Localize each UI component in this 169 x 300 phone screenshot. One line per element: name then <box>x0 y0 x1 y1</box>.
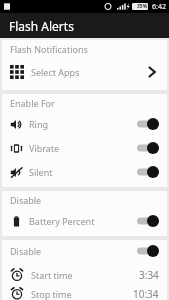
staticText: Vibrate <box>29 142 60 154</box>
button[interactable]: Battery Percent <box>2 209 167 233</box>
staticText: Select Apps <box>31 66 80 78</box>
button[interactable]: Start time <box>2 262 167 287</box>
button[interactable]: Toggle <box>137 166 159 178</box>
staticText: 6:42 <box>152 2 166 12</box>
staticText: Battery Percent <box>29 215 95 227</box>
staticText: 3:34 <box>139 268 159 282</box>
button[interactable]: Stop time <box>2 287 167 300</box>
staticText: 10:34 <box>133 287 159 300</box>
button[interactable]: Disable <box>2 240 167 262</box>
button[interactable]: Select Apps <box>2 58 167 86</box>
button[interactable]: Vibrate <box>2 136 167 160</box>
staticText: Disable <box>10 245 42 257</box>
staticText: Enable For <box>10 97 55 109</box>
button[interactable]: Ring <box>2 112 167 136</box>
staticText: Silent <box>29 166 53 178</box>
staticText: Start time <box>31 269 73 281</box>
staticText: Disable <box>10 194 42 206</box>
button[interactable]: Silent <box>2 160 167 184</box>
button[interactable]: Toggle <box>137 118 159 130</box>
staticText: Flash Notifications <box>10 43 88 55</box>
staticText: Flash Alerts <box>9 18 74 34</box>
staticText: 35% <box>137 3 148 10</box>
button[interactable]: Toggle <box>137 215 159 227</box>
button[interactable]: Toggle <box>137 245 159 257</box>
button[interactable]: Toggle <box>137 142 159 154</box>
staticText: Stop time <box>31 288 72 300</box>
staticText: Ring <box>29 118 49 130</box>
